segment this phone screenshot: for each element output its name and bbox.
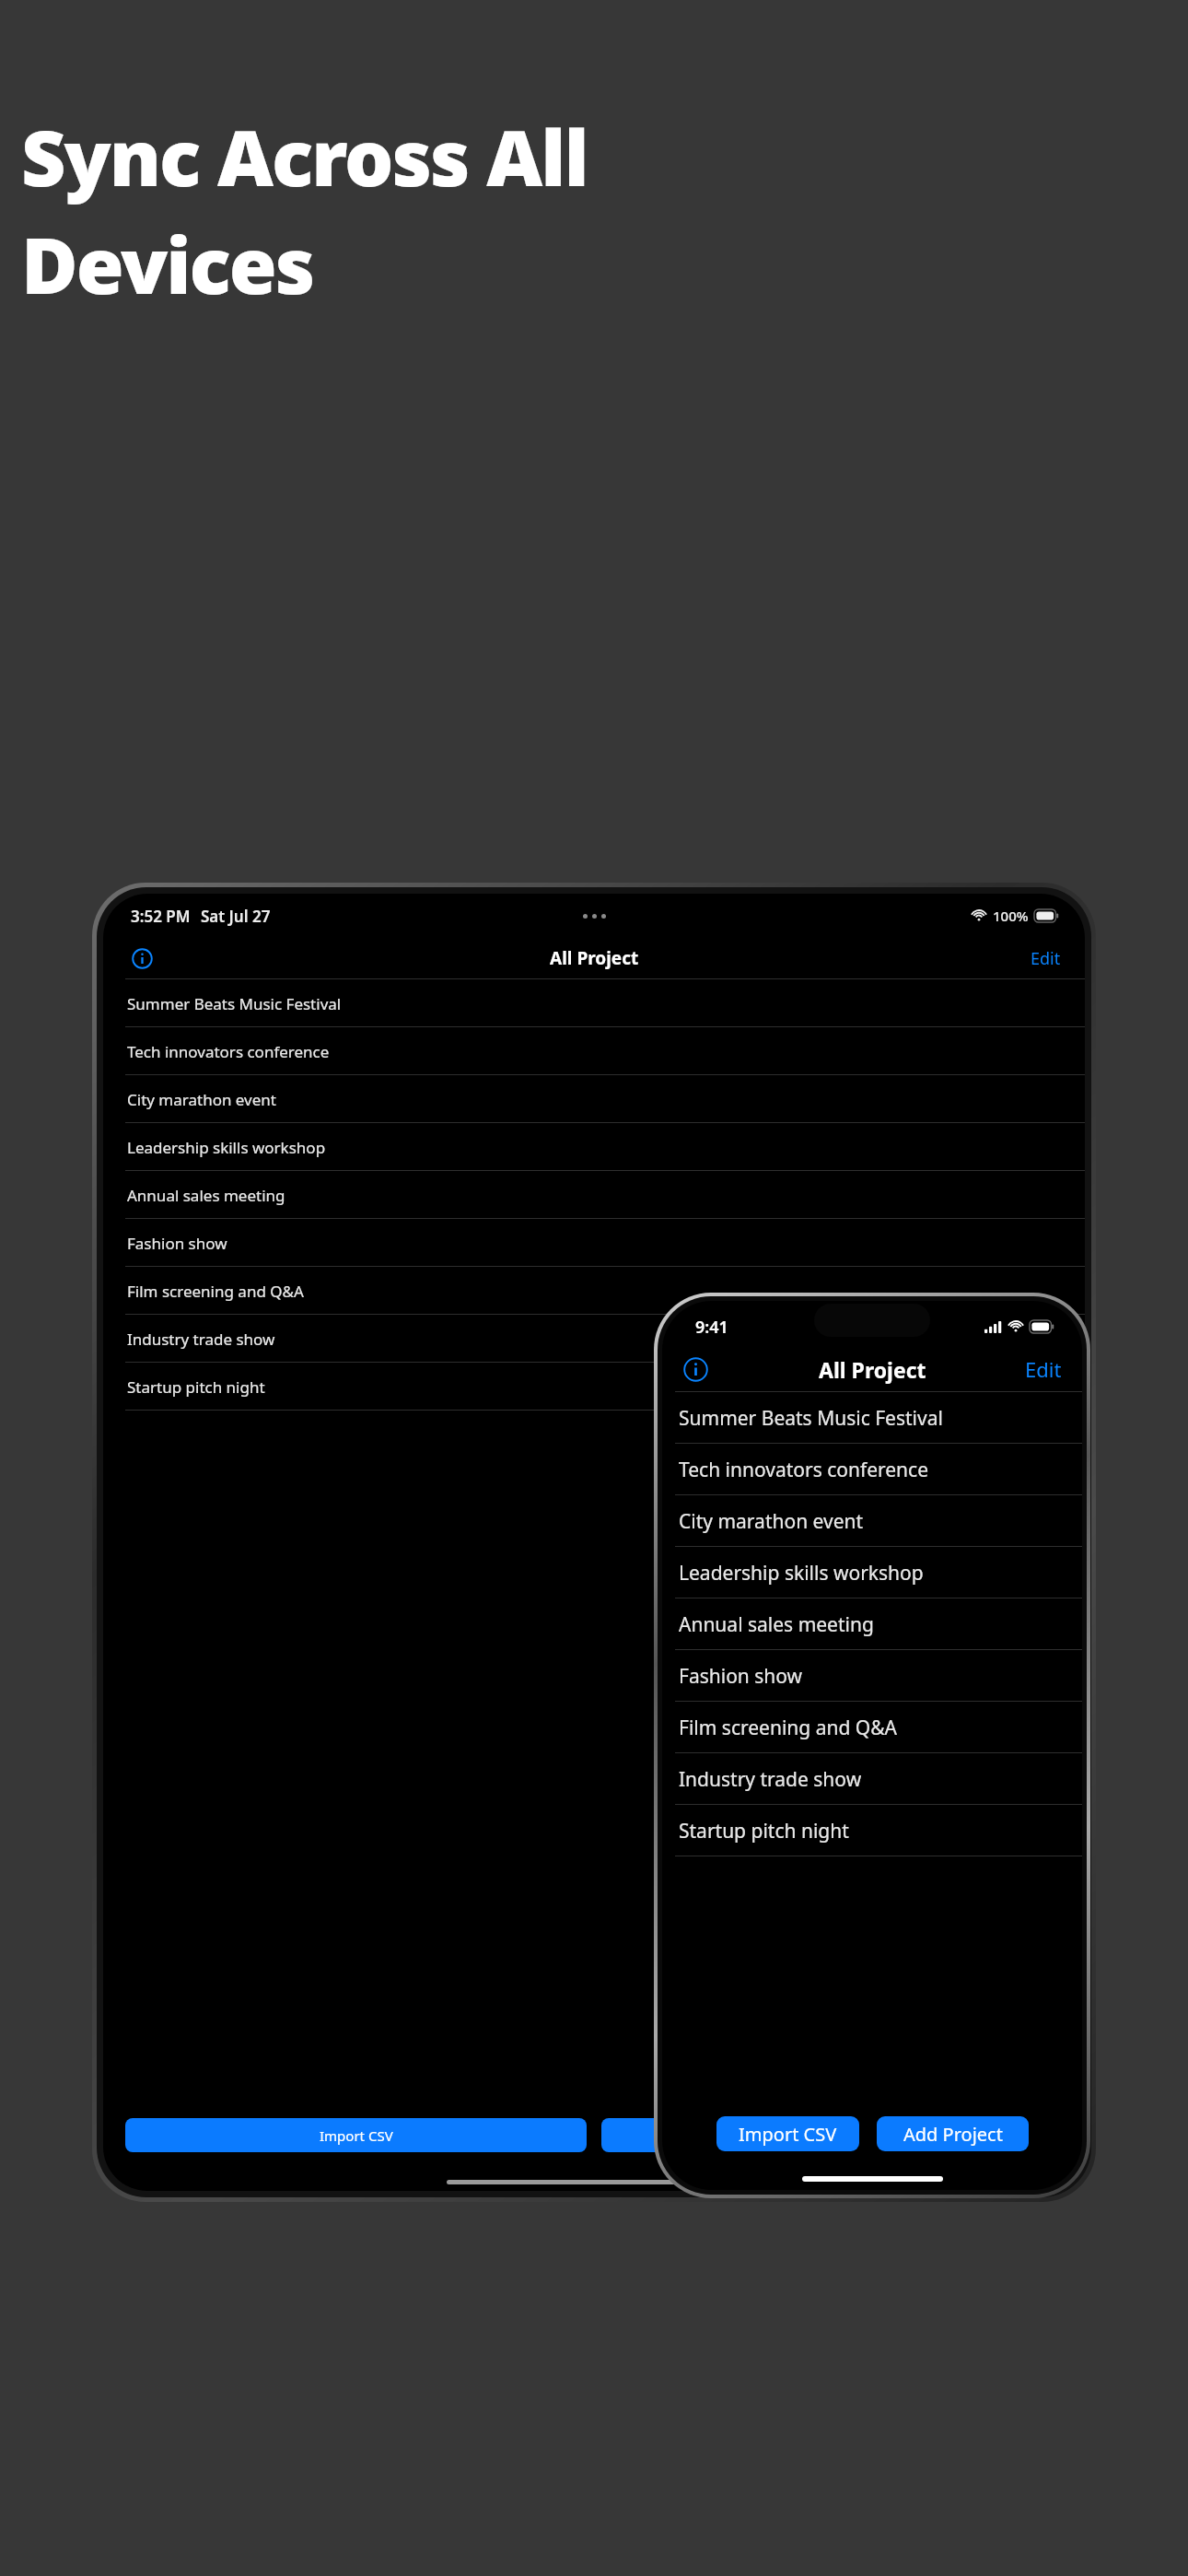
button[interactable]: Add Project <box>601 2118 1063 2152</box>
button[interactable]: Tech innovators conference <box>103 1027 1085 1075</box>
staticText: Tech innovators conference <box>127 1041 330 1062</box>
button[interactable]: Annual sales meeting <box>662 1598 1082 1650</box>
button[interactable]: City marathon event <box>662 1495 1082 1547</box>
staticText: Fashion show <box>679 1663 803 1690</box>
staticText: Summer Beats Music Festival <box>679 1405 943 1432</box>
staticText: All Project <box>819 1355 926 1384</box>
staticText: Devices <box>21 211 314 316</box>
staticText: Import CSV <box>320 2126 393 2145</box>
button[interactable]: Startup pitch night <box>103 1363 1085 1411</box>
staticText: Edit <box>1025 1355 1062 1383</box>
staticText: Leadership skills workshop <box>679 1560 924 1587</box>
staticText: Industry trade show <box>127 1329 275 1350</box>
staticText: Startup pitch night <box>127 1376 265 1398</box>
staticText: All Project <box>550 946 639 970</box>
staticText: Add Project <box>903 2122 1003 2147</box>
button[interactable]: Add Project <box>877 2116 1029 2151</box>
staticText: City marathon event <box>127 1089 276 1110</box>
button[interactable]: Edit <box>1027 943 1065 974</box>
staticText: Tech innovators conference <box>679 1457 928 1483</box>
button[interactable]: Leadership skills workshop <box>103 1123 1085 1171</box>
staticText: 9:41 <box>695 1316 728 1339</box>
button[interactable]: Import CSV <box>716 2116 859 2151</box>
staticText: Add Project <box>795 2126 869 2145</box>
staticText: City marathon event <box>679 1508 864 1535</box>
staticText: Edit <box>1031 947 1061 970</box>
button[interactable]: Film screening and Q&A <box>662 1702 1082 1753</box>
staticText: Annual sales meeting <box>679 1611 874 1638</box>
button[interactable]: Leadership skills workshop <box>662 1547 1082 1598</box>
button[interactable]: Summer Beats Music Festival <box>662 1392 1082 1444</box>
staticText: Annual sales meeting <box>127 1185 285 1206</box>
button[interactable]: Film screening and Q&A <box>103 1267 1085 1315</box>
staticText: 100% <box>993 907 1029 925</box>
staticText: Import CSV <box>739 2122 837 2147</box>
staticText: 3:52 PM <box>131 906 191 927</box>
staticText: Film screening and Q&A <box>679 1715 897 1741</box>
button[interactable]: Info <box>677 1351 714 1388</box>
button[interactable]: Import CSV <box>125 2118 587 2152</box>
button[interactable]: Industry trade show <box>662 1753 1082 1805</box>
button[interactable]: Edit <box>1021 1352 1066 1387</box>
staticText: Leadership skills workshop <box>127 1137 326 1158</box>
staticText: Industry trade show <box>679 1766 862 1793</box>
button[interactable]: Tech innovators conference <box>662 1444 1082 1495</box>
staticText: Startup pitch night <box>679 1818 849 1844</box>
staticText: Summer Beats Music Festival <box>127 993 342 1014</box>
staticText: Sat Jul 27 <box>201 906 271 927</box>
staticText: Fashion show <box>127 1233 227 1254</box>
button[interactable]: Fashion show <box>662 1650 1082 1702</box>
button[interactable]: Industry trade show <box>103 1315 1085 1363</box>
button[interactable]: Startup pitch night <box>662 1805 1082 1856</box>
button[interactable]: Fashion show <box>103 1219 1085 1267</box>
button[interactable]: Info <box>125 942 158 975</box>
staticText: Film screening and Q&A <box>127 1281 304 1302</box>
staticText: Sync Across All <box>21 103 588 208</box>
button[interactable]: City marathon event <box>103 1075 1085 1123</box>
button[interactable]: Annual sales meeting <box>103 1171 1085 1219</box>
button[interactable]: Summer Beats Music Festival <box>103 979 1085 1027</box>
